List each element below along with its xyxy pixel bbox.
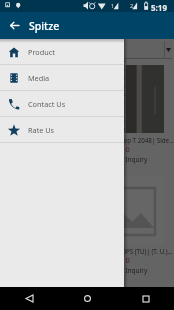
staticText: Rate Us — [28, 125, 55, 135]
staticText: 1 — [111, 2, 115, 9]
staticText: ₹ 0 — [120, 145, 130, 154]
button[interactable]: Media — [0, 65, 124, 90]
staticText: Designer TOPS (TU)| (T. U.) BAR SET Kit — [90, 247, 174, 255]
staticText: Wardrobe Top T 2048| Side Mounting Rail — [3, 136, 87, 144]
button[interactable] — [8, 41, 172, 59]
staticText: 2 — [130, 2, 134, 9]
button[interactable]: Recent apps — [134, 287, 157, 310]
staticText: Wardrobe Top T 2048| Side Mounting Rail — [90, 136, 174, 144]
button[interactable]: Home — [76, 287, 99, 310]
button[interactable]: Designer TOPS (TU)| (T. U.) BAR SET Kit — [89, 176, 173, 280]
button[interactable]: Contact Us — [0, 91, 124, 116]
staticText: Product — [28, 47, 55, 57]
button[interactable]: Back — [3, 12, 25, 39]
button[interactable]: Wardrobe Top T 2048| Side Mounting Rail — [2, 65, 86, 169]
staticText: 5:19 — [151, 2, 167, 13]
staticText: Send Inquiry — [108, 155, 148, 164]
button[interactable]: Product — [0, 39, 124, 64]
staticText: Media — [28, 73, 50, 83]
staticText: Send Inquiry — [108, 266, 148, 275]
staticText: ₹ 0 — [120, 256, 130, 265]
staticText: Spitze — [29, 19, 60, 33]
button[interactable]: Wardrobe Top T 2048| Side Mounting Rail — [89, 65, 173, 169]
button[interactable]: Rate Us — [0, 117, 124, 142]
button[interactable]: Back — [18, 287, 41, 310]
staticText: Contact Us — [28, 99, 66, 109]
